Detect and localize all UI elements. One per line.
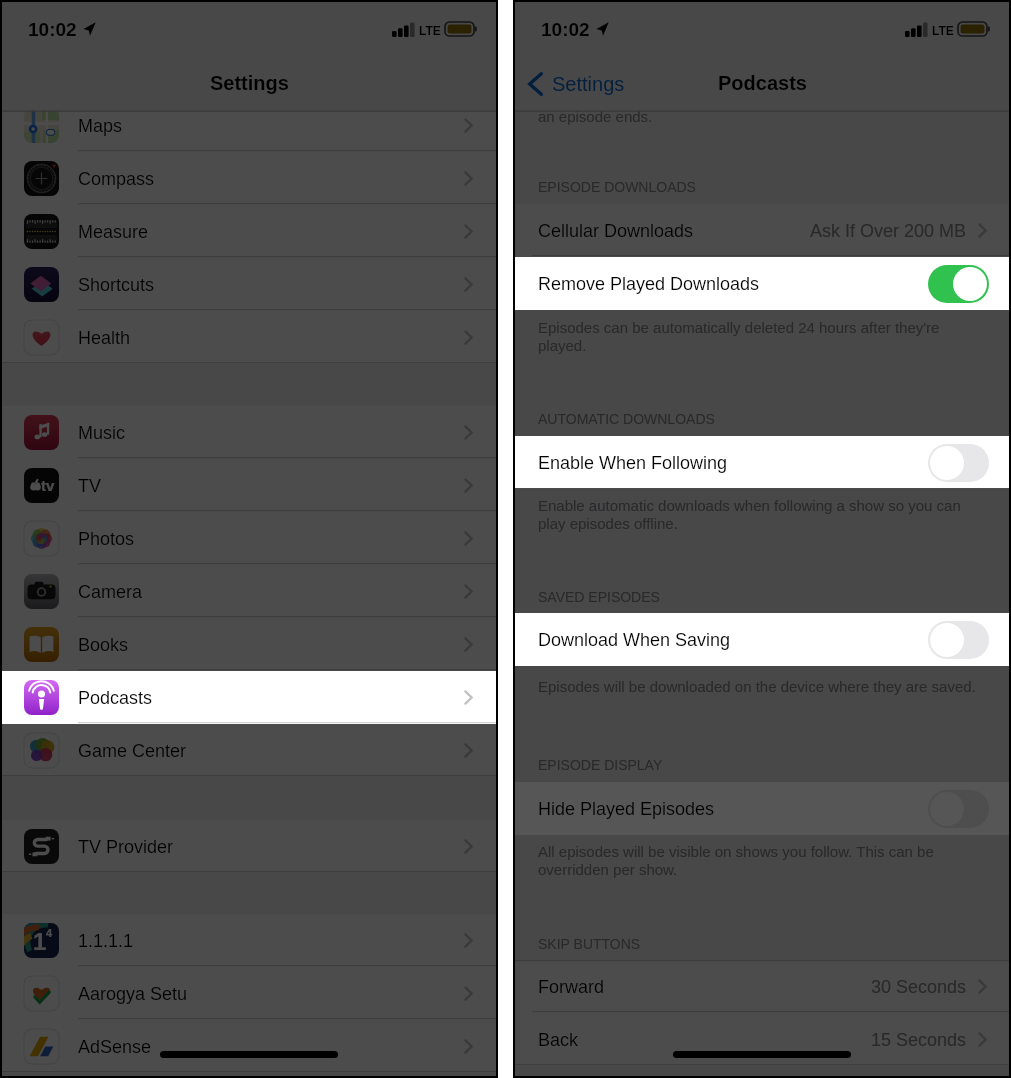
staticText: AdSense xyxy=(78,1037,152,1057)
staticText: Podcasts xyxy=(718,72,807,94)
staticText: LTE xyxy=(932,24,954,37)
staticText: Compass xyxy=(78,169,155,189)
button[interactable]: Health xyxy=(0,311,498,364)
button[interactable]: Aarogya Setu xyxy=(0,967,498,1020)
staticText: Enable When Following xyxy=(538,453,728,473)
staticText: Photos xyxy=(78,529,135,549)
button[interactable]: Compass xyxy=(0,152,498,205)
staticText: All episodes will be visible on shows yo… xyxy=(538,843,983,878)
staticText: 1.1.1.1 xyxy=(78,931,134,951)
staticText: TV Provider xyxy=(78,837,174,857)
staticText: Remove Played Downloads xyxy=(538,274,760,294)
button[interactable]: Download When Saving xyxy=(513,613,1011,666)
staticText: Enable automatic downloads when followin… xyxy=(538,497,983,532)
staticText: an episode ends. xyxy=(538,108,983,125)
staticText: Episodes can be automatically deleted 24… xyxy=(538,319,983,354)
staticText: 4 xyxy=(46,927,53,939)
staticText: Health xyxy=(78,328,131,348)
staticText: 1 xyxy=(33,928,47,955)
button[interactable]: Music xyxy=(0,406,498,459)
button[interactable]: Game Center xyxy=(0,724,498,777)
button[interactable]: Podcasts xyxy=(0,671,498,724)
staticText: Podcasts xyxy=(78,688,153,708)
staticText: SAVED EPISODES xyxy=(538,589,660,605)
staticText: EPISODE DISPLAY xyxy=(538,757,663,773)
button[interactable]: Measure xyxy=(0,205,498,258)
staticText: EPISODE DOWNLOADS xyxy=(538,179,696,195)
staticText: Ask If Over 200 MB xyxy=(810,221,967,241)
button[interactable]: Remove Played Downloads xyxy=(513,257,1011,310)
staticText: Download When Saving xyxy=(538,630,731,650)
button[interactable]: Books xyxy=(0,618,498,671)
staticText: Forward xyxy=(538,977,605,997)
staticText: Aarogya Setu xyxy=(78,984,188,1004)
staticText: Game Center xyxy=(78,741,187,761)
staticText: tv xyxy=(41,477,55,494)
staticText: SKIP BUTTONS xyxy=(538,936,641,952)
staticText: TV xyxy=(78,476,102,496)
button[interactable]: TV Provider xyxy=(0,820,498,873)
button[interactable]: Enable When Following xyxy=(513,436,1011,489)
staticText: Measure xyxy=(78,222,149,242)
staticText: AUTOMATIC DOWNLOADS xyxy=(538,411,715,427)
staticText: Cellular Downloads xyxy=(538,221,694,241)
button[interactable]: Photos xyxy=(0,512,498,565)
staticText: 15 Seconds xyxy=(871,1030,967,1050)
button[interactable]: Back xyxy=(513,1013,1011,1066)
staticText: LTE xyxy=(419,24,441,37)
button[interactable]: Camera xyxy=(0,565,498,618)
staticText: Music xyxy=(78,423,126,443)
staticText: Settings xyxy=(552,73,625,95)
button[interactable]: tv xyxy=(0,459,498,512)
button[interactable]: Forward xyxy=(513,960,1011,1013)
button[interactable]: Cellular Downloads xyxy=(513,204,1011,257)
staticText: Shortcuts xyxy=(78,275,155,295)
staticText: Hide Played Episodes xyxy=(538,799,715,819)
staticText: 10:02 xyxy=(28,19,77,40)
staticText: Camera xyxy=(78,582,143,602)
staticText: Back xyxy=(538,1030,579,1050)
button[interactable]: AdSense xyxy=(0,1020,498,1073)
button[interactable]: Back xyxy=(528,64,625,104)
staticText: Settings xyxy=(210,72,289,94)
staticText: 10:02 xyxy=(541,19,590,40)
button[interactable]: Maps xyxy=(0,99,498,152)
button[interactable]: Shortcuts xyxy=(0,258,498,311)
staticText: Episodes will be downloaded on the devic… xyxy=(538,678,983,695)
button[interactable]: 1 xyxy=(0,914,498,967)
staticText: Maps xyxy=(78,116,123,136)
button[interactable]: Hide Played Episodes xyxy=(513,782,1011,835)
staticText: 30 Seconds xyxy=(871,977,967,997)
staticText: Books xyxy=(78,635,129,655)
other: Back xyxy=(528,72,543,96)
